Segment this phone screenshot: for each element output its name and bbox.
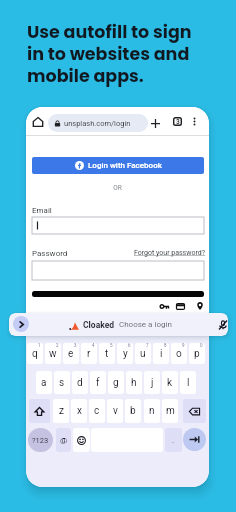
staticText: 6 [128, 343, 131, 348]
staticText: 1 [38, 343, 41, 348]
staticText: b [130, 405, 136, 417]
staticText: c [94, 405, 100, 417]
staticText: unsplash.com/login [64, 119, 131, 128]
staticText: Cloaked [83, 320, 115, 330]
button[interactable]: d [72, 371, 88, 394]
button[interactable]: h [126, 371, 142, 394]
button[interactable]: t [99, 343, 115, 364]
staticText: Login with Facebook [88, 161, 162, 170]
staticText: 7 [146, 343, 149, 348]
staticText: u [140, 348, 146, 360]
button[interactable]: n [144, 399, 160, 423]
staticText: 0 [200, 343, 203, 348]
button[interactable]: @ [56, 428, 71, 452]
button[interactable]: Passwords [158, 300, 170, 312]
staticText: r [87, 348, 91, 360]
button[interactable]: Mute microphone [215, 317, 228, 332]
staticText: Password [32, 249, 68, 258]
button[interactable]: c [89, 399, 105, 423]
staticText: @ [60, 436, 68, 445]
button[interactable]: o [171, 343, 187, 364]
staticText: g [113, 377, 119, 389]
button[interactable] [32, 291, 204, 297]
button[interactable]: Shift [29, 399, 50, 423]
staticText: 3 [176, 118, 180, 126]
button[interactable] [32, 261, 204, 280]
button[interactable]: s [54, 371, 70, 394]
staticText: Use autofill to sign in to websites and … [27, 20, 192, 88]
staticText: 2 [56, 343, 59, 348]
button[interactable]: p [189, 343, 205, 364]
button[interactable]: Cloaked [83, 313, 228, 336]
staticText: d [77, 377, 83, 389]
staticText: OR [26, 184, 209, 192]
button[interactable]: q [27, 343, 43, 364]
button[interactable]: u [135, 343, 151, 364]
button[interactable]: m [162, 399, 178, 423]
staticText: 8 [164, 343, 167, 348]
button[interactable]: i [153, 343, 169, 364]
button[interactable]: Emoji [73, 428, 90, 452]
staticText: p [194, 348, 200, 360]
staticText: 3 [74, 343, 77, 348]
button[interactable]: l [180, 371, 196, 394]
button[interactable]: a [36, 371, 52, 394]
staticText: z [59, 405, 64, 417]
staticText: t [105, 348, 109, 360]
staticText: n [149, 405, 155, 417]
staticText: h [131, 377, 137, 389]
button[interactable]: g [108, 371, 124, 394]
button[interactable]: f [90, 371, 106, 394]
staticText: Choose a login [119, 320, 172, 329]
staticText: a [41, 377, 47, 389]
button[interactable]: Open tabs [171, 115, 183, 127]
button[interactable]: b [125, 399, 141, 423]
button[interactable]: r [81, 343, 97, 364]
button[interactable]: Enter [183, 428, 206, 451]
staticText: k [167, 377, 173, 389]
staticText: . [172, 436, 175, 445]
button[interactable]: More options [188, 115, 200, 127]
button[interactable]: ?123 [28, 428, 53, 452]
staticText: q [32, 348, 38, 360]
staticText: ?123 [32, 436, 49, 445]
button[interactable]: e [63, 343, 79, 364]
staticText: w [49, 348, 57, 360]
staticText: Email [32, 206, 52, 215]
button[interactable]: Payment methods [174, 300, 186, 312]
button[interactable]: z [53, 399, 69, 423]
staticText: m [166, 405, 175, 417]
staticText: 5 [110, 343, 113, 348]
staticText: f [96, 377, 100, 389]
button[interactable]: Backspace [183, 399, 206, 423]
button[interactable]: Addresses [194, 300, 206, 312]
staticText: j [151, 377, 154, 389]
button[interactable]: unsplash.com/login [48, 114, 148, 132]
staticText: v [113, 405, 118, 417]
staticText: x [77, 405, 82, 417]
staticText: e [68, 348, 74, 360]
button[interactable]: Forgot your password? [134, 249, 206, 257]
staticText: 9 [182, 343, 185, 348]
button[interactable]: w [45, 343, 61, 364]
button[interactable]: x [71, 399, 87, 423]
staticText: i [160, 348, 163, 360]
staticText: s [59, 377, 65, 389]
button[interactable]: y [117, 343, 133, 364]
staticText: 4 [92, 343, 95, 348]
button[interactable]: Login with Facebook [32, 157, 204, 174]
button[interactable] [32, 217, 204, 234]
button[interactable]: v [107, 399, 123, 423]
button[interactable]: j [144, 371, 160, 394]
button[interactable]: k [162, 371, 178, 394]
staticText: o [176, 348, 182, 360]
button[interactable]: Home [30, 114, 46, 130]
button[interactable]: New tab [147, 115, 163, 131]
button[interactable]: Expand autofill [13, 316, 29, 332]
staticText: y [123, 348, 128, 360]
staticText: l [187, 377, 190, 389]
